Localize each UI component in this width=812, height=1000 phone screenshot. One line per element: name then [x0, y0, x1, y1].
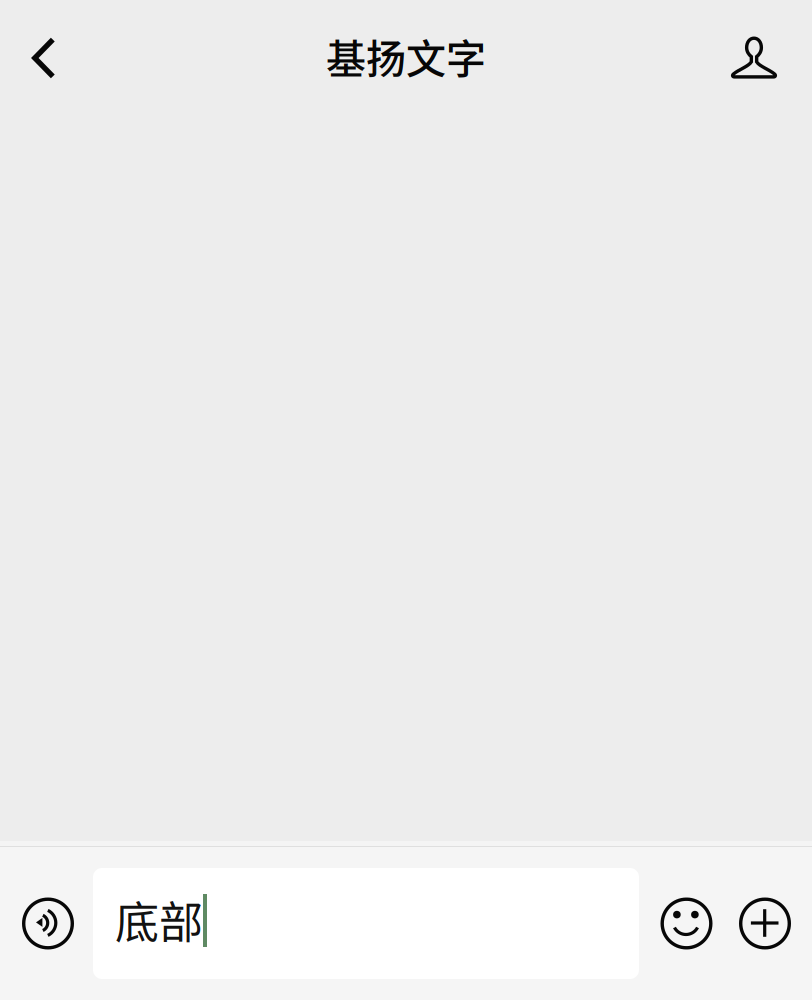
staticText: 底部 [115, 888, 203, 951]
button[interactable]: More options [734, 857, 796, 989]
staticText: 基扬文字 [326, 27, 486, 85]
button[interactable]: Hold to talk [0, 857, 93, 989]
button[interactable]: Emoji [639, 857, 734, 989]
button[interactable]: Back [16, 17, 72, 91]
button[interactable]: Chat information [726, 17, 782, 91]
